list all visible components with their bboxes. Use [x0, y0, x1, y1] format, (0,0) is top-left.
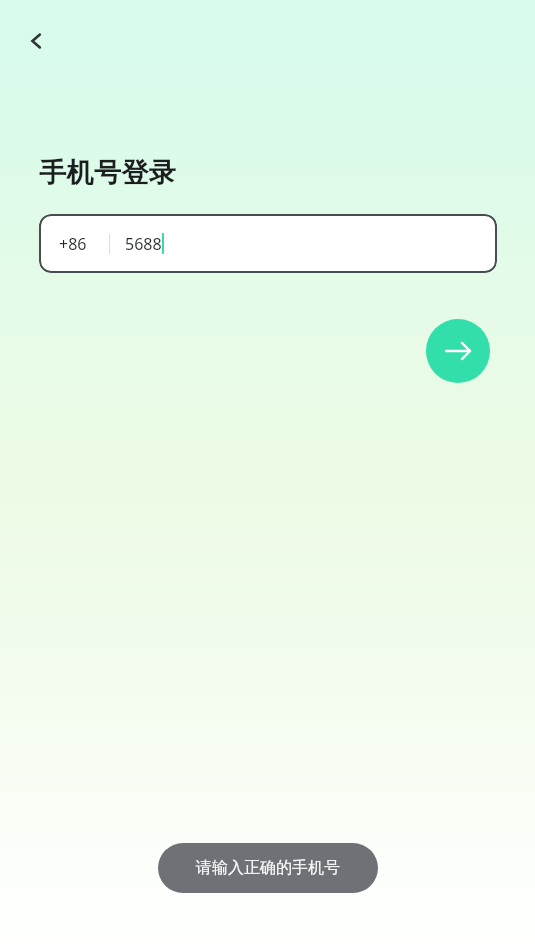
button[interactable]: Next — [426, 319, 490, 383]
button[interactable]: Back — [14, 18, 60, 64]
staticText: +86 — [59, 233, 87, 255]
staticText: 手机号登录 — [39, 156, 176, 190]
staticText: 请输入正确的手机号 — [196, 858, 340, 878]
staticText: 5688 — [125, 233, 162, 255]
button[interactable]: +86 — [39, 214, 497, 273]
